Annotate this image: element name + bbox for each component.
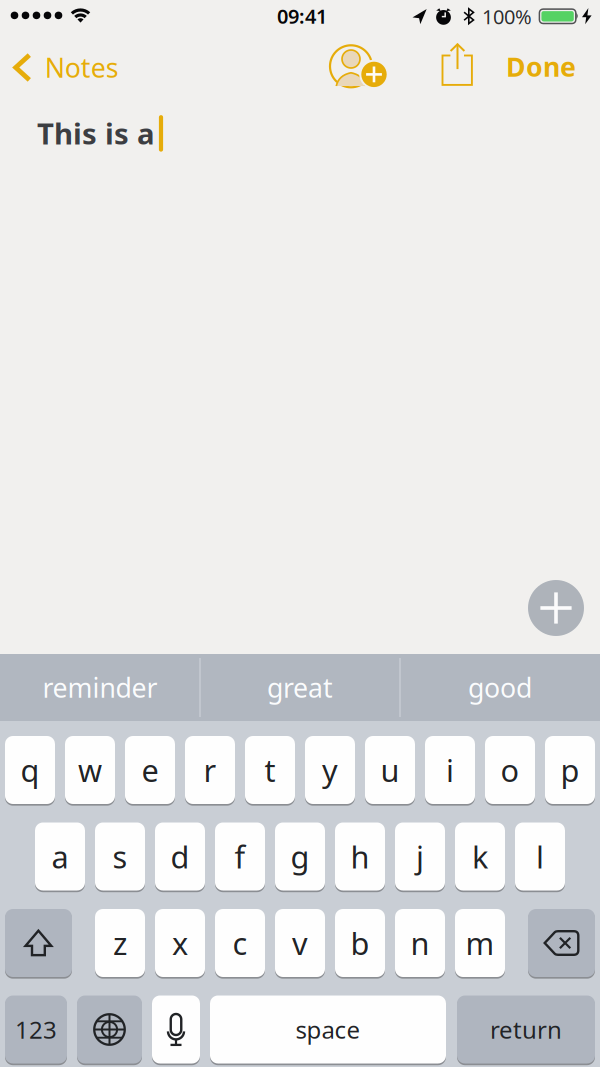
staticText: d [170,836,189,877]
staticText: s [112,836,127,877]
button[interactable]: space [210,995,446,1063]
button[interactable]: z [95,909,145,977]
button[interactable]: l [515,822,565,890]
button[interactable]: Done [506,49,576,84]
button[interactable]: Delete [528,909,595,977]
button[interactable]: Add checklist [528,580,584,636]
button[interactable]: m [455,909,505,977]
button[interactable]: g [275,822,325,890]
button[interactable]: good [401,654,599,721]
staticText: This is a [37,113,155,152]
staticText: g [290,836,309,877]
button[interactable]: Notes [13,50,119,85]
button[interactable]: b [335,909,385,977]
staticText: l [536,836,544,877]
button[interactable]: c [215,909,265,977]
staticText: 123 [15,1014,57,1045]
staticText: a [51,836,68,877]
button[interactable]: s [95,822,145,890]
staticText: i [446,750,454,790]
button[interactable]: r [185,736,235,804]
staticText: n [410,923,429,963]
staticText: b [350,923,369,963]
staticText: 100% [482,3,532,30]
button[interactable]: return [457,995,595,1063]
button[interactable]: q [5,736,55,804]
staticText: r [203,750,216,790]
staticText: great [267,670,333,705]
staticText: x [172,923,188,963]
button[interactable]: 123 [5,995,67,1063]
staticText: m [465,923,494,963]
staticText: good [468,670,532,705]
staticText: Notes [45,50,119,85]
staticText: 09:41 [277,3,327,29]
button[interactable]: h [335,822,385,890]
staticText: reminder [42,670,157,705]
button[interactable]: i [425,736,475,804]
staticText: v [292,923,308,963]
button[interactable]: Dictate [152,995,200,1063]
button[interactable]: e [125,736,175,804]
button[interactable]: f [215,822,265,890]
staticText: p [560,750,579,790]
button[interactable]: x [155,909,205,977]
button[interactable]: reminder [1,654,199,721]
staticText: h [350,836,369,877]
button[interactable]: j [395,822,445,890]
staticText: o [500,750,519,790]
button[interactable]: Add people to note [330,42,388,92]
staticText: e [141,750,158,790]
staticText: f [234,836,245,877]
button[interactable]: a [35,822,85,890]
button[interactable]: d [155,822,205,890]
button[interactable]: n [395,909,445,977]
staticText: Done [506,49,576,84]
staticText: space [295,1014,360,1045]
button[interactable]: p [545,736,595,804]
button[interactable]: t [245,736,295,804]
button[interactable]: Shift [5,909,72,977]
button[interactable]: o [485,736,535,804]
staticText: y [322,750,338,790]
button[interactable]: u [365,736,415,804]
staticText: c [232,923,247,963]
button[interactable]: y [305,736,355,804]
button[interactable]: v [275,909,325,977]
button[interactable]: k [455,822,505,890]
staticText: z [113,923,127,963]
staticText: return [490,1014,562,1045]
staticText: j [416,836,424,877]
staticText: k [472,836,488,877]
staticText: u [380,750,399,790]
button[interactable]: Next keyboard [77,995,142,1063]
staticText: w [78,750,102,790]
button[interactable]: Share [441,43,475,87]
button[interactable]: w [65,736,115,804]
button[interactable]: great [201,654,399,721]
staticText: t [264,750,275,790]
staticText: q [20,750,39,790]
